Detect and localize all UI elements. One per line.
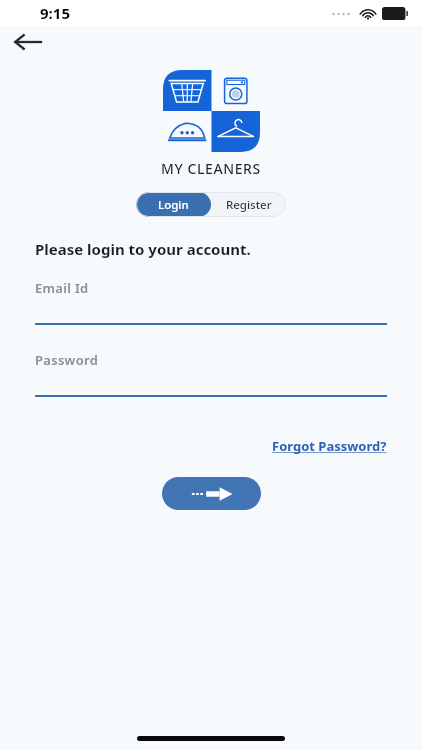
staticText: 9:15: [40, 3, 70, 23]
button[interactable]: Submit login: [162, 477, 261, 510]
button[interactable]: Password: [35, 351, 387, 397]
staticText: Login: [158, 197, 189, 213]
button[interactable]: Email Id: [35, 279, 387, 325]
button[interactable]: Back: [10, 26, 44, 58]
staticText: Email Id: [35, 279, 89, 297]
staticText: Please login to your account.: [35, 239, 251, 259]
button[interactable]: Login: [136, 192, 211, 217]
staticText: MY CLEANERS: [161, 159, 261, 178]
staticText: Password: [35, 351, 99, 369]
button[interactable]: Forgot Password?: [272, 437, 387, 455]
button[interactable]: Register: [211, 192, 286, 217]
staticText: Register: [226, 197, 272, 213]
